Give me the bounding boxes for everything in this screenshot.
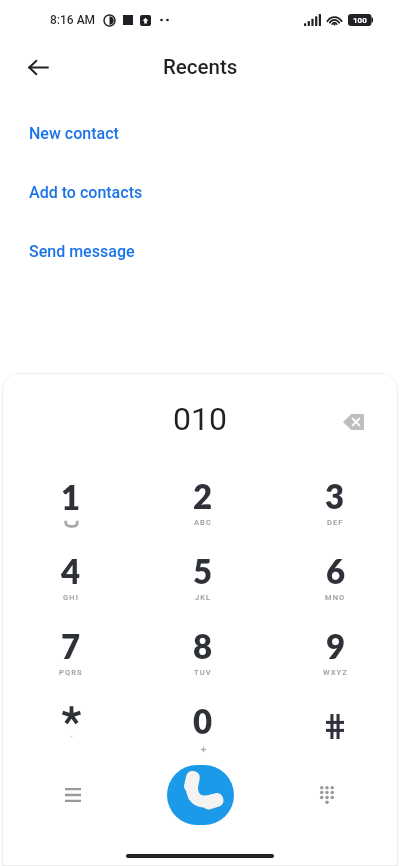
button[interactable]: 6: [269, 540, 398, 615]
button[interactable]: Call: [167, 765, 234, 825]
staticText: GHI: [63, 593, 79, 602]
staticText: 010: [173, 400, 227, 438]
button[interactable]: 8: [137, 615, 269, 690]
staticText: 3: [325, 476, 345, 516]
button[interactable]: Menu: [50, 772, 96, 818]
staticText: 4: [61, 551, 81, 591]
button[interactable]: Back: [18, 47, 58, 87]
button[interactable]: [5, 690, 137, 765]
staticText: ABC: [194, 518, 212, 527]
staticText: Add to contacts: [29, 183, 143, 202]
staticText: 0: [193, 701, 213, 741]
button[interactable]: 9: [269, 615, 398, 690]
staticText: 6: [326, 551, 346, 591]
button[interactable]: 7: [5, 615, 137, 690]
staticText: 9: [326, 626, 346, 666]
staticText: 8:16 AM: [50, 13, 96, 27]
staticText: 5: [193, 551, 213, 591]
staticText: DEF: [327, 518, 344, 527]
staticText: Send message: [29, 242, 135, 261]
button[interactable]: [269, 690, 398, 765]
staticText: JKL: [195, 593, 212, 602]
staticText: 8: [193, 626, 213, 666]
staticText: 7: [61, 626, 81, 666]
button[interactable]: New contact: [0, 104, 400, 163]
staticText: 2: [193, 476, 213, 516]
staticText: MNO: [325, 593, 346, 602]
staticText: WXYZ: [323, 668, 348, 677]
button[interactable]: 1: [5, 465, 137, 540]
staticText: New contact: [29, 124, 119, 143]
button[interactable]: 5: [137, 540, 269, 615]
staticText: PQRS: [59, 668, 83, 677]
button[interactable]: 3: [269, 465, 398, 540]
button[interactable]: Add to contacts: [0, 163, 400, 222]
staticText: 1: [61, 477, 81, 517]
button[interactable]: 4: [5, 540, 137, 615]
button[interactable]: Backspace: [333, 402, 373, 442]
button[interactable]: 0: [137, 690, 269, 765]
button[interactable]: 2: [137, 465, 269, 540]
button[interactable]: Dialpad: [304, 772, 350, 818]
button[interactable]: Send message: [0, 222, 400, 281]
staticText: TUV: [194, 668, 212, 677]
staticText: 100: [353, 16, 367, 25]
staticText: Recents: [163, 55, 238, 79]
